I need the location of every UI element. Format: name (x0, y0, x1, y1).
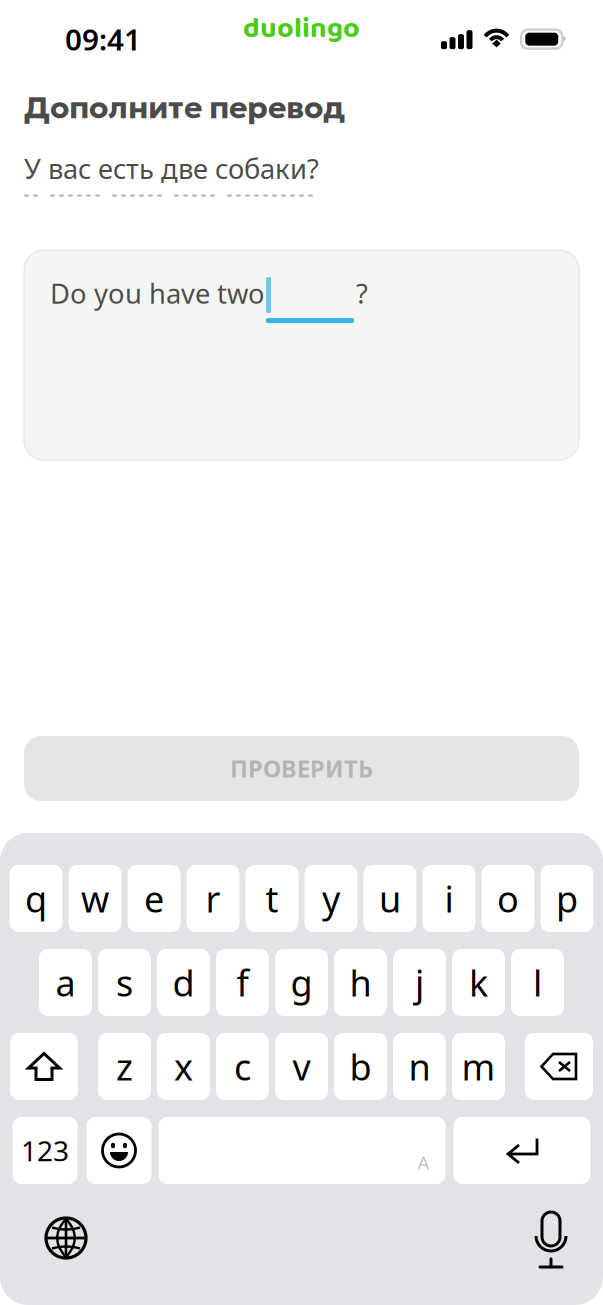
staticText: s (116, 958, 133, 1007)
staticText: ПРОВЕРИТЬ (230, 752, 373, 784)
button[interactable]: z (98, 1033, 151, 1100)
button[interactable]: Delete (525, 1033, 593, 1100)
button[interactable]: k (452, 949, 505, 1016)
staticText: g (290, 958, 312, 1007)
button[interactable]: c (216, 1033, 269, 1100)
button[interactable]: f (216, 949, 269, 1016)
button[interactable]: ПРОВЕРИТЬ (24, 736, 579, 801)
button[interactable]: t (245, 865, 298, 932)
button[interactable]: l (511, 949, 564, 1016)
button[interactable]: g (275, 949, 328, 1016)
staticText: Дополните перевод (24, 88, 345, 127)
button[interactable]: s (98, 949, 151, 1016)
staticText: q (25, 874, 47, 923)
button[interactable]: Return (453, 1117, 590, 1184)
button[interactable]: d (157, 949, 210, 1016)
staticText: duolingo (243, 6, 360, 52)
button[interactable]: n (393, 1033, 446, 1100)
staticText: d (172, 958, 194, 1007)
staticText: w (81, 874, 109, 923)
button[interactable]: q (9, 865, 62, 932)
button[interactable]: m (452, 1033, 505, 1100)
staticText: i (444, 874, 453, 923)
button[interactable]: e (127, 865, 180, 932)
staticText: h (349, 958, 371, 1007)
staticText: a (55, 958, 75, 1007)
button[interactable]: o (481, 865, 534, 932)
button[interactable]: y (304, 865, 357, 932)
staticText: l (533, 958, 542, 1007)
staticText: m (461, 1042, 495, 1091)
staticText: f (236, 958, 248, 1007)
button[interactable]: h (334, 949, 387, 1016)
staticText: ? (356, 274, 368, 312)
button[interactable]: j (393, 949, 446, 1016)
button[interactable]: u (363, 865, 416, 932)
staticText: 09:41 (65, 19, 141, 59)
staticText: b (349, 1042, 371, 1091)
staticText: u (379, 874, 401, 923)
button[interactable]: p (540, 865, 593, 932)
button[interactable]: x (157, 1033, 210, 1100)
staticText: x (174, 1042, 193, 1091)
button[interactable]: r (186, 865, 239, 932)
button[interactable]: Emoji (86, 1117, 151, 1184)
staticText: v (292, 1042, 310, 1091)
staticText: e (144, 874, 164, 923)
button[interactable]: Switch keyboard (38, 1210, 94, 1266)
staticText: z (116, 1042, 133, 1091)
staticText: t (265, 874, 278, 923)
button[interactable]: b (334, 1033, 387, 1100)
staticText: У вас есть две собаки? (24, 150, 319, 187)
staticText: c (234, 1042, 251, 1091)
button[interactable]: w (68, 865, 121, 932)
staticText: j (415, 958, 424, 1007)
staticText: p (556, 874, 578, 923)
staticText: 123 (21, 1131, 69, 1169)
button[interactable]: 123 (12, 1117, 77, 1184)
button[interactable]: v (275, 1033, 328, 1100)
staticText: n (408, 1042, 430, 1091)
staticText: Do you have two (50, 274, 265, 312)
staticText: k (469, 958, 488, 1007)
staticText: r (205, 874, 220, 923)
staticText: y (322, 874, 340, 923)
button[interactable]: i (422, 865, 475, 932)
button[interactable]: Shift (10, 1033, 78, 1100)
button[interactable]: Dictate (527, 1207, 575, 1269)
button[interactable]: Space (158, 1117, 445, 1184)
staticText: o (497, 874, 519, 923)
staticText: A (417, 1150, 429, 1175)
button[interactable]: a (39, 949, 92, 1016)
